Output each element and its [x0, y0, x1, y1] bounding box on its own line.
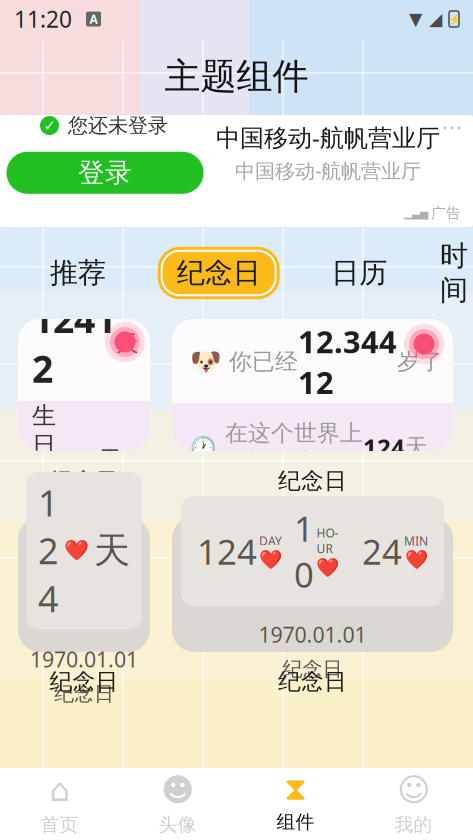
staticText: 12.34412 — [298, 321, 397, 402]
staticText: 推荐 — [50, 256, 106, 290]
staticText: 纪念日 — [49, 467, 118, 495]
staticText: ⌂ — [49, 772, 69, 808]
staticText: 124 — [38, 479, 59, 622]
staticText: 主题组件 — [164, 54, 308, 99]
staticText: 登录 — [78, 156, 132, 189]
staticText: 天 — [94, 528, 130, 572]
staticText: 纪念日 — [49, 668, 118, 696]
staticText: 中国移动-航帆营业厅 — [235, 157, 421, 184]
staticText: 生日还有 — [32, 401, 56, 519]
button[interactable]: 日历 — [331, 256, 387, 290]
staticText: ☺ — [397, 772, 430, 808]
staticText: 首页 — [40, 813, 78, 836]
staticText: ▁▃▅ — [404, 207, 428, 219]
staticText: 你已经 — [229, 348, 298, 375]
button[interactable]: ☻ — [118, 768, 236, 840]
staticText: A — [89, 11, 97, 27]
staticText: 1970.01.01 — [30, 645, 138, 673]
button[interactable]: 推荐 — [50, 256, 106, 290]
button[interactable]: ⧗ — [236, 768, 354, 840]
staticText: 纪念日 — [54, 681, 114, 706]
staticText: 天 — [405, 433, 428, 461]
staticText: 纪念日 — [177, 256, 261, 290]
staticText: ❤️ — [64, 539, 89, 562]
staticText: 天 — [116, 330, 139, 357]
button[interactable]: 124 — [172, 517, 453, 652]
staticText: 组件 — [276, 811, 314, 833]
staticText: 124 — [363, 431, 405, 463]
staticText: 日历 — [331, 256, 387, 290]
staticText: 中国移动-航帆营业厅 — [216, 121, 440, 153]
staticText: ▼ — [409, 9, 422, 29]
button[interactable]: ☺ — [354, 768, 472, 840]
staticText: 纪念日 — [278, 467, 347, 495]
staticText: 纪念日 — [282, 657, 342, 681]
staticText: 1970.01.01 — [258, 620, 366, 649]
staticText: 11:20 — [14, 4, 72, 34]
staticText: 小豌豆在世界已经 — [32, 248, 137, 284]
staticText: ⚡ — [447, 13, 460, 25]
staticText: 124 — [197, 528, 257, 574]
staticText: 时间 — [440, 239, 468, 307]
staticText: ❤️ — [259, 549, 282, 570]
staticText: 🕐 — [190, 435, 217, 459]
staticText: 124 — [56, 443, 98, 477]
button[interactable]: 纪念日 — [158, 247, 280, 299]
staticText: • • • — [443, 121, 461, 135]
staticText: DAY — [259, 533, 282, 549]
button[interactable]: 时间 — [440, 239, 468, 307]
staticText: ✓ — [43, 117, 55, 134]
button[interactable]: 🐶 — [172, 319, 453, 451]
staticText: 在这个世界上已经存在了 — [225, 419, 363, 475]
button[interactable]: ⌂ — [0, 768, 118, 840]
staticText: ☻ — [161, 772, 194, 808]
staticText: 12412 — [32, 294, 116, 393]
staticText: ❤️ — [316, 557, 339, 578]
button[interactable]: 登录 — [6, 152, 203, 194]
button[interactable]: 124 — [18, 517, 150, 652]
staticText: 24 — [362, 528, 402, 574]
button[interactable]: 小豌豆在世界已经 — [18, 319, 150, 451]
staticText: 您还未登录 — [68, 113, 168, 138]
staticText: ⧗ — [284, 774, 306, 806]
staticText: ◢ — [429, 9, 442, 29]
staticText: 10 — [294, 505, 314, 597]
staticText: 天 — [98, 445, 122, 475]
staticText: HOUR — [316, 525, 338, 557]
staticText: 我的 — [394, 813, 432, 836]
staticText: 纪念日 — [278, 668, 347, 696]
staticText: 🐶 — [190, 347, 222, 376]
staticText: 头像 — [158, 813, 196, 836]
staticText: ❤️ — [404, 549, 427, 570]
staticText: 广告 — [431, 204, 461, 222]
staticText: 岁了 — [397, 348, 443, 375]
staticText: MIN — [404, 533, 428, 549]
